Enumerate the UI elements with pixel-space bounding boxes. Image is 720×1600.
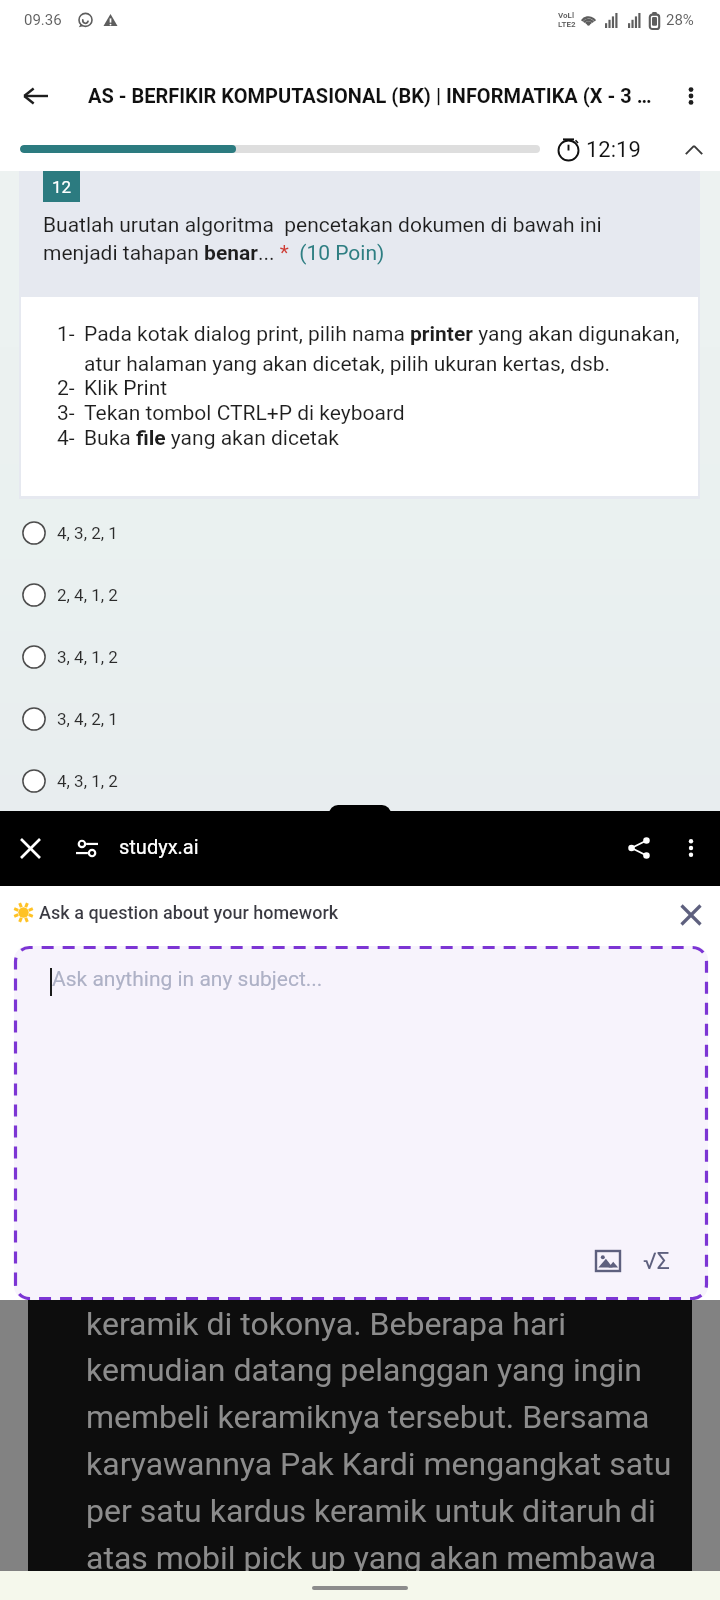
staticText: 12:19: [586, 137, 641, 163]
button[interactable]: Collapse: [672, 134, 715, 165]
staticText: AS - BERFIKIR KOMPUTASIONAL (BK) | INFOR…: [88, 84, 688, 107]
staticText: 09.36: [24, 11, 62, 29]
button[interactable]: 4, 3, 2, 1: [0, 502, 720, 564]
staticText: √Σ: [643, 1248, 670, 1275]
button[interactable]: 2, 4, 1, 2: [0, 564, 720, 626]
staticText: Klik Print: [84, 376, 684, 401]
staticText: Ask anything in any subject...: [52, 967, 323, 992]
button[interactable]: Close: [7, 825, 53, 871]
staticText: Tekan tombol CTRL+P di keyboard: [84, 401, 684, 426]
button[interactable]: 3, 4, 2, 1: [0, 688, 720, 750]
button[interactable]: 4, 3, 1, 2: [0, 750, 720, 812]
staticText: Buka file yang akan dicetak: [84, 426, 684, 451]
button[interactable]: Back: [11, 71, 60, 120]
staticText: 3, 4, 2, 1: [57, 709, 118, 729]
staticText: Buatlah urutan algoritma pencetakan doku…: [43, 213, 643, 265]
staticText: 2-: [57, 376, 75, 401]
staticText: 3-: [57, 401, 75, 426]
button[interactable]: Dismiss: [668, 892, 714, 938]
staticText: Pada kotak dialog print, pilih nama prin…: [84, 322, 684, 376]
staticText: studyx.ai: [119, 835, 199, 858]
staticText: 4, 3, 2, 1: [57, 523, 118, 543]
button[interactable]: More: [668, 825, 714, 871]
staticText: 3, 4, 1, 2: [57, 647, 118, 667]
staticText: LTE2: [558, 20, 576, 29]
staticText: 2, 4, 1, 2: [57, 585, 118, 605]
staticText: 12: [52, 177, 72, 197]
staticText: 4, 3, 1, 2: [57, 771, 118, 791]
staticText: Ask a question about your homework: [39, 902, 339, 923]
button[interactable]: Share: [616, 825, 662, 871]
button[interactable]: Insert image: [591, 1244, 625, 1278]
staticText: keramik di tokonya. Beberapa hari kemudi…: [86, 1305, 672, 1576]
button[interactable]: More options: [666, 71, 715, 120]
button[interactable]: Site settings: [66, 827, 108, 869]
staticText: 1-: [57, 322, 75, 347]
staticText: VoLl: [558, 11, 575, 20]
button[interactable]: Insert formula: [639, 1244, 673, 1278]
staticText: 4-: [57, 426, 75, 451]
button[interactable]: 3, 4, 1, 2: [0, 626, 720, 688]
staticText: 28%: [666, 11, 694, 29]
